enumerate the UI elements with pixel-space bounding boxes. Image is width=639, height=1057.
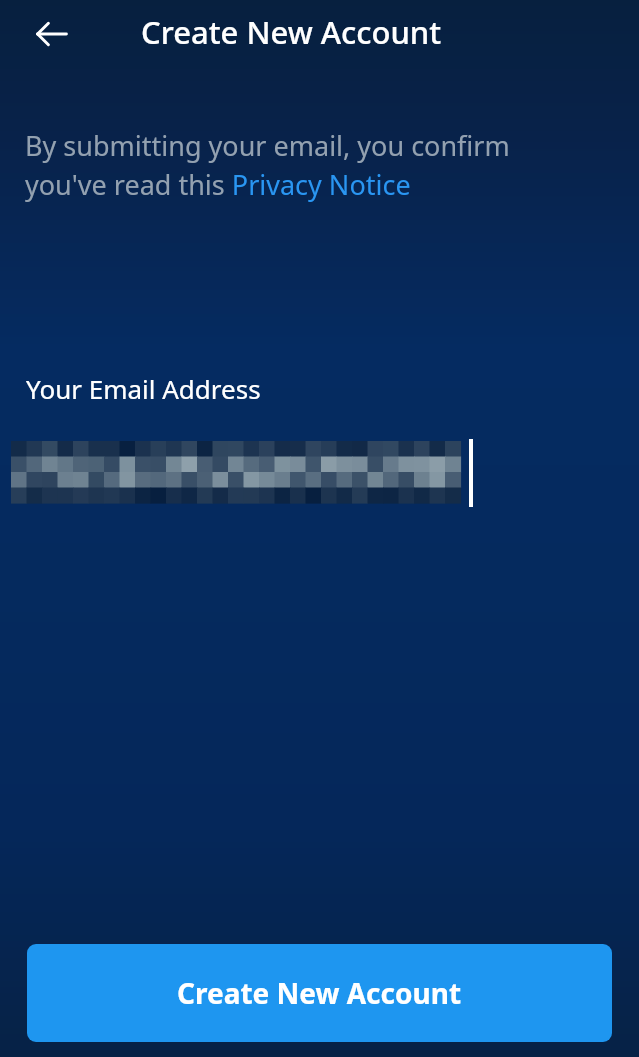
button[interactable]: Email address input [0, 423, 639, 497]
staticText: Create New Account [177, 974, 462, 1012]
button[interactable]: Back [22, 4, 82, 64]
button[interactable]: Create New Account [27, 944, 612, 1042]
button[interactable]: By submitting your email, you confirm yo… [25, 127, 510, 203]
staticText: Your Email Address [26, 371, 261, 406]
staticText: Create New Account [141, 11, 442, 53]
